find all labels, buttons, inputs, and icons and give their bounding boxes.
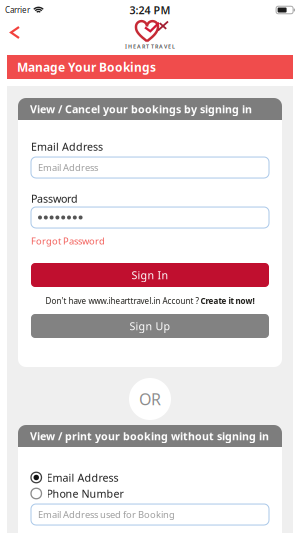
button[interactable]: Phone Number	[31, 486, 269, 501]
button[interactable]: Forgot Password	[31, 235, 105, 247]
staticText: Phone Number	[46, 486, 123, 501]
button[interactable]: Email Address used for Booking	[31, 504, 269, 525]
button[interactable]: Sign In	[31, 263, 269, 287]
staticText: Email Address	[31, 139, 103, 154]
staticText: Password	[31, 191, 78, 206]
staticText: Don't have www.ihearttravel.in Account ?…	[45, 296, 254, 306]
staticText: Email Address used for Booking	[38, 508, 175, 521]
staticText: 3:24 PM	[129, 3, 170, 17]
button[interactable]: Email Address	[31, 470, 269, 485]
button[interactable]: Sign Up	[31, 314, 269, 338]
staticText: Email Address	[46, 470, 118, 485]
staticText: View / print your booking without signin…	[30, 429, 269, 443]
staticText: Sign Up	[129, 319, 170, 333]
button[interactable]: Back	[0, 19, 29, 46]
staticText: Manage Your Bookings	[17, 59, 156, 75]
staticText: Sign In	[131, 268, 168, 282]
staticText: Carrier	[5, 5, 30, 15]
staticText: View / Cancel your bookings by signing i…	[30, 102, 252, 116]
button[interactable]: Password	[31, 207, 269, 228]
staticText: Forgot Password	[31, 235, 105, 247]
staticText: I H E A R T T R A V E L	[125, 43, 175, 50]
button[interactable]: Don't have www.ihearttravel.in Account ?…	[31, 295, 269, 307]
button[interactable]: Email Address	[31, 157, 269, 178]
staticText: Email Address	[38, 161, 98, 174]
staticText: OR	[139, 388, 161, 410]
